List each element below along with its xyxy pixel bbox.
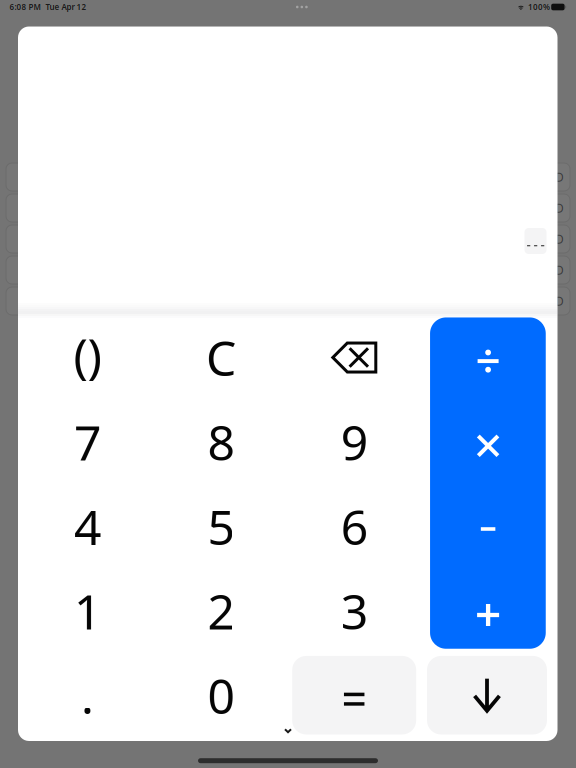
staticText: USD [539, 293, 564, 309]
staticText: - - - [526, 235, 544, 253]
staticText: 2 [207, 579, 234, 643]
button[interactable]: . [26, 657, 149, 734]
button[interactable]: Multiply [430, 405, 546, 487]
button[interactable]: 1 [26, 573, 149, 649]
button[interactable]: () [26, 319, 149, 396]
button[interactable]: 9 [293, 404, 416, 480]
staticText: () [73, 323, 101, 387]
button[interactable]: 4 [26, 488, 149, 565]
staticText: 9 [341, 410, 368, 474]
button[interactable]: 3 [293, 573, 416, 649]
button[interactable]: Delete [293, 319, 416, 396]
staticText: . [81, 664, 94, 727]
staticText: 100% [528, 2, 550, 12]
staticText: 4 [74, 495, 101, 558]
button[interactable]: 5 [159, 488, 283, 565]
button[interactable]: Minus [430, 488, 546, 570]
staticText: USD [539, 200, 564, 216]
staticText: 1 [74, 579, 101, 643]
button[interactable]: 0 [159, 657, 283, 734]
staticText: 8 [207, 410, 234, 474]
button[interactable]: 2 [159, 573, 283, 649]
button[interactable]: 6 [293, 488, 416, 565]
staticText: 6:08 PM [9, 2, 40, 12]
button[interactable]: Divide [430, 320, 546, 402]
staticText: 0 [207, 664, 234, 727]
staticText: Tue Apr 12 [45, 2, 86, 12]
staticText: C [206, 326, 236, 389]
staticText: 3 [341, 579, 368, 643]
staticText: USD [539, 262, 564, 278]
staticText: USD [539, 169, 564, 185]
staticText: USD [539, 231, 564, 247]
button[interactable]: 8 [159, 404, 283, 480]
staticText: 7 [74, 410, 101, 474]
button[interactable]: 7 [26, 404, 149, 480]
button[interactable]: Plus [430, 574, 546, 656]
button[interactable]: Equals [292, 656, 416, 734]
button[interactable]: Dismiss keypad [427, 656, 547, 734]
staticText: 5 [207, 495, 234, 558]
button[interactable]: C [159, 319, 283, 396]
staticText: 6 [341, 495, 368, 558]
